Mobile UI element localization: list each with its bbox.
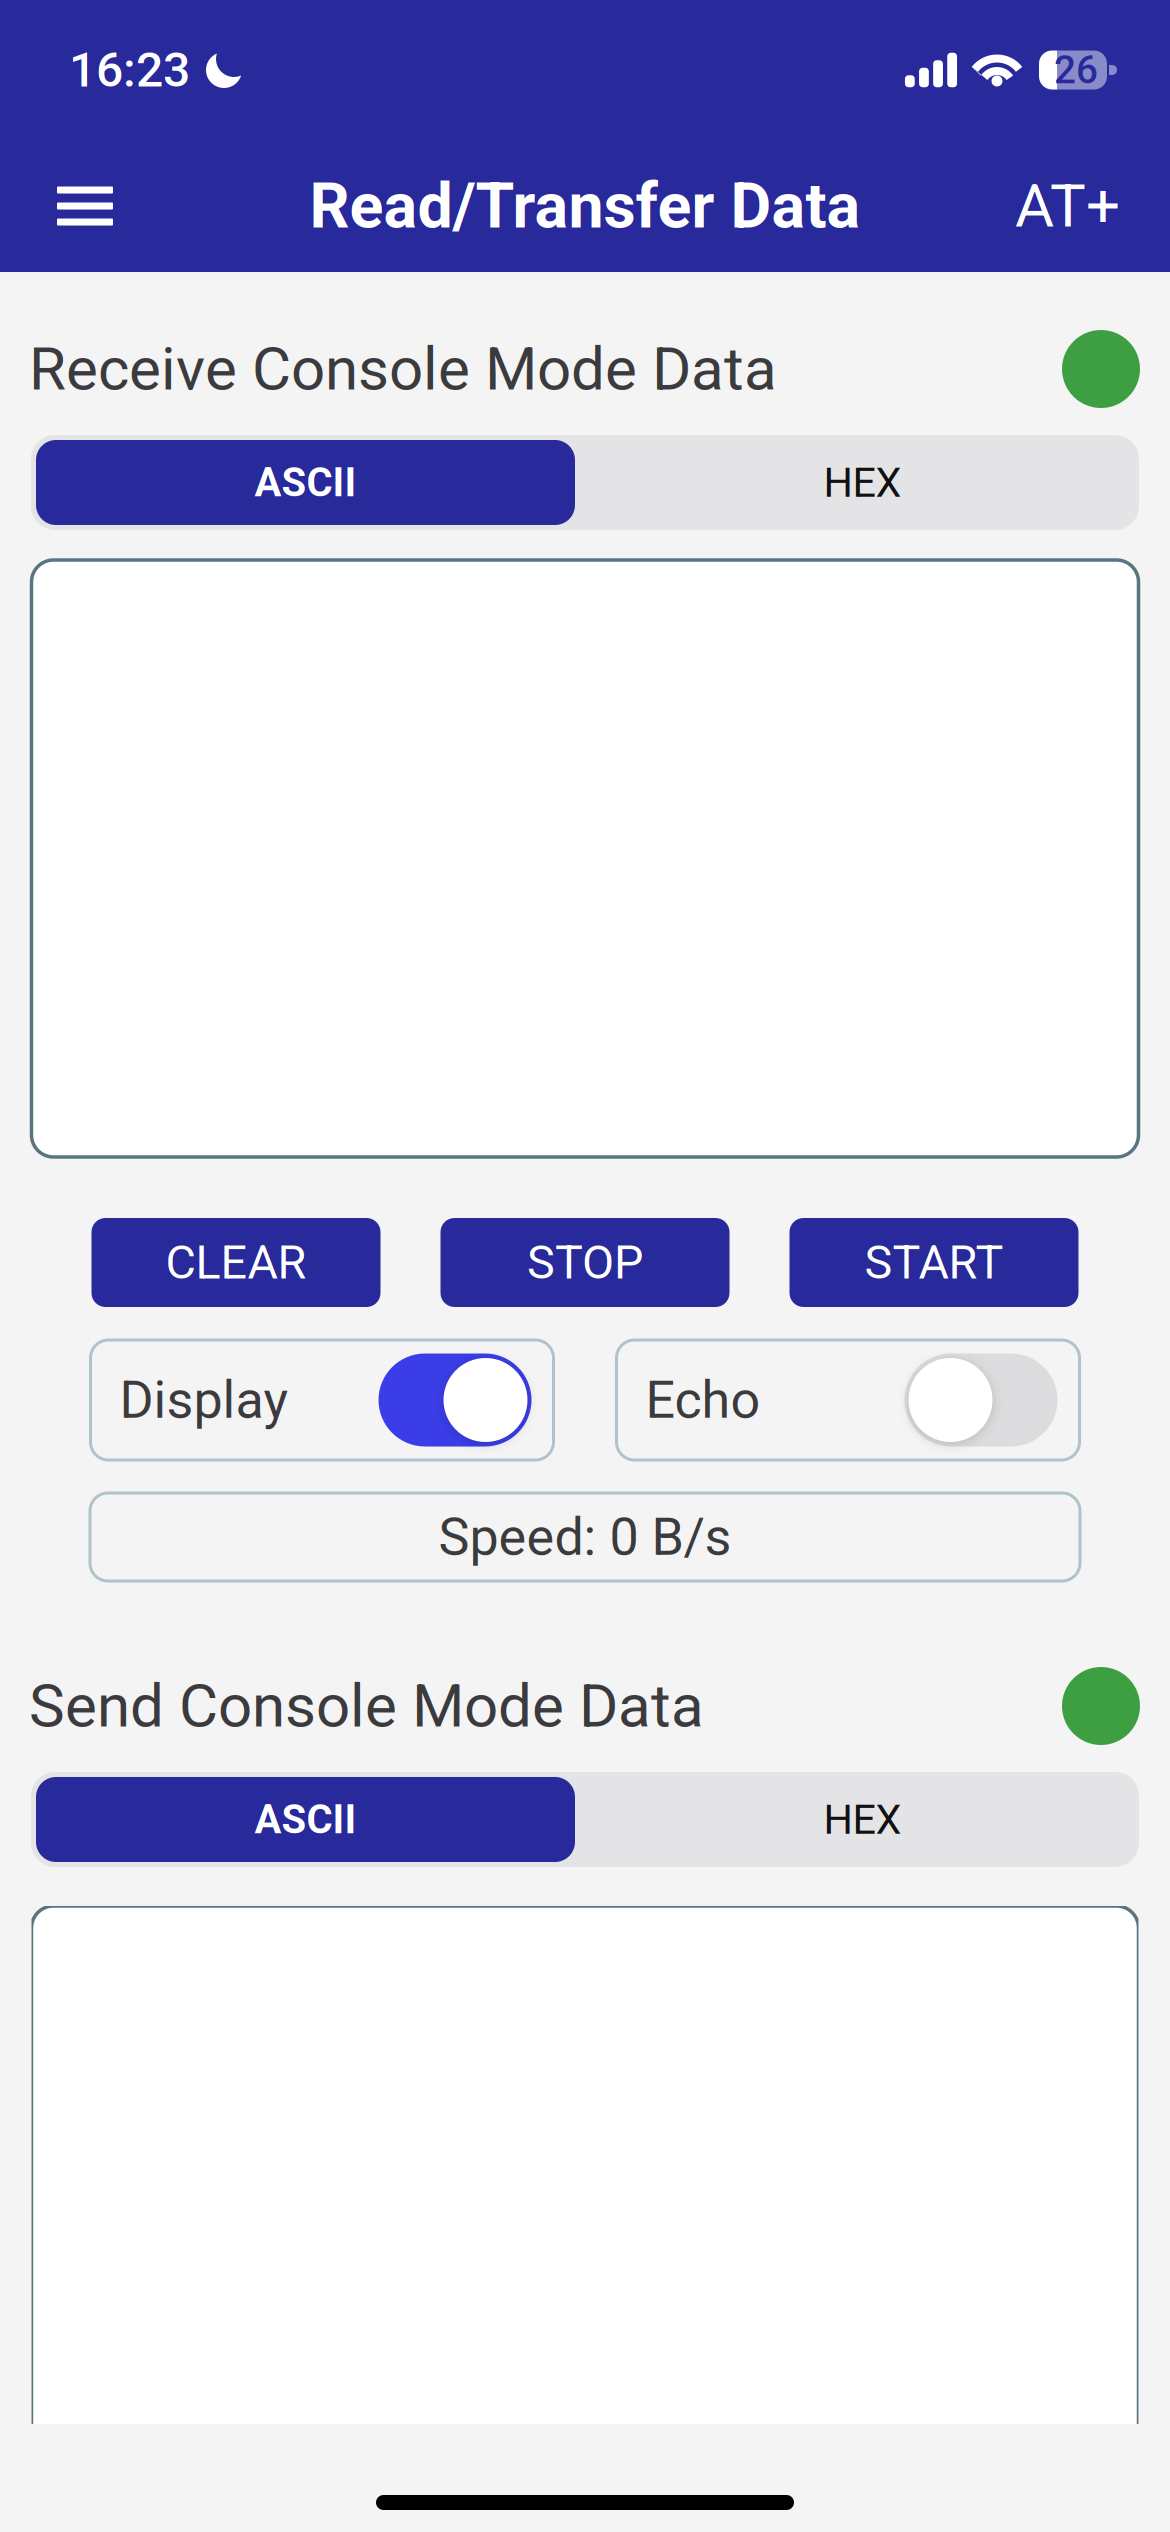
staticText: Echo: [645, 1369, 760, 1430]
button[interactable]: Echo: [616, 1340, 1079, 1460]
staticText: CLEAR: [165, 1235, 306, 1290]
staticText: 16:23: [69, 42, 190, 98]
button[interactable]: AT+: [1015, 151, 1120, 261]
staticText: STOP: [527, 1235, 643, 1290]
staticText: ASCII: [254, 459, 356, 506]
staticText: HEX: [823, 458, 901, 507]
staticText: Speed: 0 B/s: [438, 1506, 731, 1567]
staticText: AT+: [1015, 171, 1120, 241]
button[interactable]: STOP: [440, 1218, 729, 1307]
button[interactable]: HEX: [575, 440, 1134, 525]
button[interactable]: ASCII: [36, 1777, 575, 1862]
staticText: START: [864, 1235, 1003, 1290]
button[interactable]: Menu: [30, 151, 140, 261]
button[interactable]: HEX: [575, 1777, 1134, 1862]
staticText: Receive Console Mode Data: [29, 334, 777, 404]
staticText: HEX: [823, 1795, 901, 1844]
button[interactable]: Display: [90, 1340, 553, 1460]
button[interactable]: START: [789, 1218, 1078, 1307]
button[interactable]: CLEAR: [91, 1218, 380, 1307]
staticText: ASCII: [254, 1796, 356, 1843]
staticText: Display: [119, 1369, 288, 1430]
staticText: 26: [1054, 47, 1098, 93]
staticText: Send Console Mode Data: [29, 1671, 704, 1741]
button[interactable]: ASCII: [36, 440, 575, 525]
staticText: Read/Transfer Data: [309, 169, 860, 243]
